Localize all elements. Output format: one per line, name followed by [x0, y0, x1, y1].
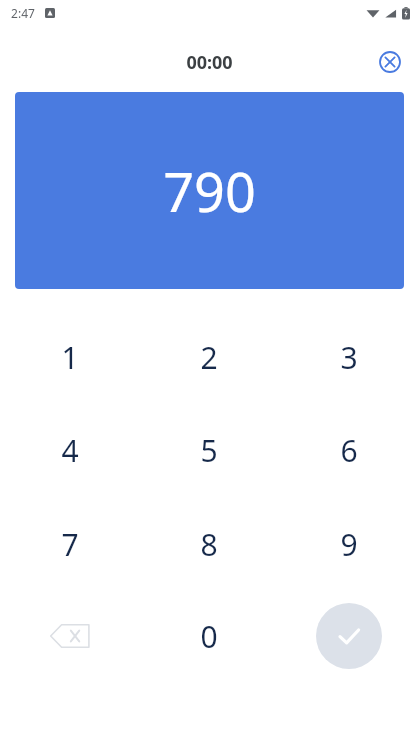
- staticText: 4: [61, 430, 79, 471]
- button[interactable]: Confirm: [316, 603, 382, 669]
- staticText: 3: [340, 337, 358, 378]
- button[interactable]: 6: [289, 406, 409, 494]
- button[interactable]: 5: [149, 406, 269, 494]
- staticText: 790: [163, 154, 256, 228]
- staticText: 9: [340, 524, 358, 565]
- staticText: 2: [200, 337, 218, 378]
- staticText: 2:47: [11, 5, 35, 21]
- button[interactable]: 7: [10, 500, 130, 588]
- button[interactable]: 3: [289, 313, 409, 401]
- button[interactable]: 4: [10, 406, 130, 494]
- button[interactable]: 0: [149, 592, 269, 680]
- button[interactable]: 9: [289, 500, 409, 588]
- staticText: 1: [61, 337, 79, 378]
- staticText: 6: [340, 430, 358, 471]
- button[interactable]: 8: [149, 500, 269, 588]
- button[interactable]: 790: [15, 92, 404, 289]
- staticText: 5: [200, 430, 218, 471]
- button[interactable]: Close: [366, 38, 414, 86]
- staticText: 00:00: [186, 50, 233, 75]
- staticText: 8: [200, 524, 218, 565]
- staticText: 0: [200, 616, 218, 657]
- button[interactable]: 1: [10, 313, 130, 401]
- staticText: 7: [61, 524, 79, 565]
- button[interactable]: 2: [149, 313, 269, 401]
- button[interactable]: Backspace: [10, 592, 130, 680]
